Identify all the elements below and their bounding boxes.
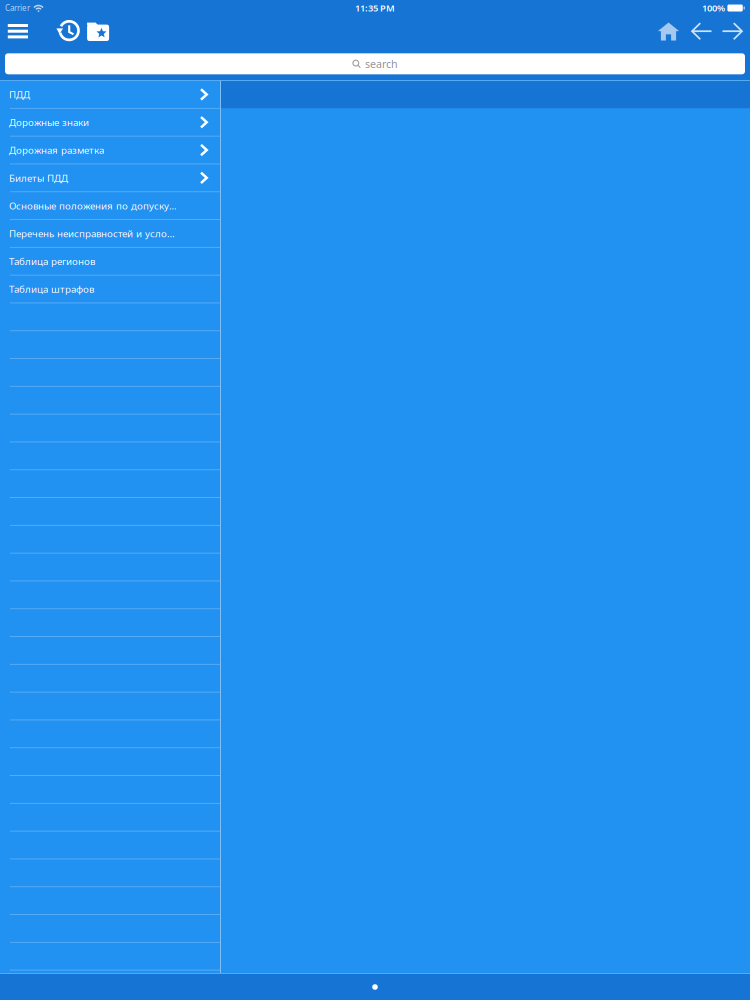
button[interactable]: Home <box>651 13 685 49</box>
button[interactable]: Перечень неисправностей и усло… <box>0 220 220 248</box>
button[interactable]: Основные положения по допуску… <box>0 192 220 220</box>
staticText: Таблица штрафов <box>9 282 94 296</box>
staticText: Дорожная разметка <box>9 143 104 157</box>
button[interactable]: History <box>50 13 84 49</box>
staticText: ПДД <box>9 88 30 101</box>
staticText: 11:35 PM <box>355 2 395 14</box>
button[interactable]: Таблица штрафов <box>0 276 220 303</box>
button[interactable]: Forward <box>715 13 749 49</box>
staticText: search <box>365 57 398 71</box>
button[interactable]: ПДД <box>0 81 220 109</box>
button[interactable]: Menu <box>0 13 38 49</box>
staticText: Перечень неисправностей и усло… <box>9 227 175 240</box>
staticText: Дорожные знаки <box>9 116 89 129</box>
staticText: Таблица регионов <box>9 255 95 268</box>
staticText: Основные положения по допуску… <box>9 199 177 212</box>
button[interactable]: search <box>0 53 750 74</box>
staticText: 100% <box>702 2 725 14</box>
button[interactable]: Билеты ПДД <box>0 164 220 192</box>
button[interactable]: Дорожная разметка <box>0 137 220 164</box>
button[interactable]: Back <box>685 13 719 49</box>
button[interactable]: Bookmarks <box>81 13 115 49</box>
button[interactable]: Таблица регионов <box>0 248 220 276</box>
button[interactable]: Дорожные знаки <box>0 109 220 137</box>
staticText: Билеты ПДД <box>9 171 68 184</box>
staticText: Carrier <box>5 3 30 13</box>
